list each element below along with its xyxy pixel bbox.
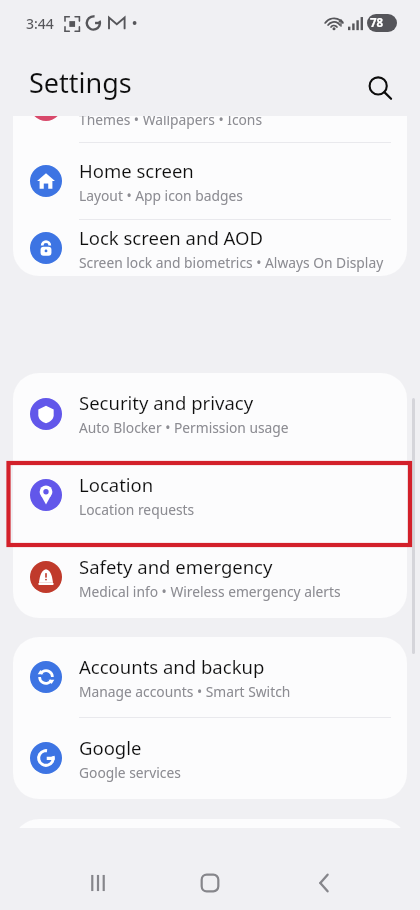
staticText: Medical info • Wireless emergency alerts bbox=[79, 582, 341, 601]
button[interactable]: Lock screen and AOD bbox=[13, 220, 407, 276]
staticText: Home screen bbox=[79, 158, 194, 183]
staticText: Lock screen and AOD bbox=[79, 225, 263, 250]
staticText: Manage accounts • Smart Switch bbox=[79, 682, 291, 701]
button[interactable]: Search bbox=[356, 64, 404, 112]
button[interactable]: Recent apps bbox=[62, 856, 134, 910]
button[interactable]: Security and privacy bbox=[13, 373, 407, 454]
staticText: Google services bbox=[79, 763, 181, 782]
staticText: Accounts and backup bbox=[79, 654, 265, 679]
button[interactable]: Location bbox=[13, 454, 407, 536]
button[interactable]: Safety and emergency bbox=[13, 536, 407, 618]
staticText: Settings bbox=[29, 64, 132, 101]
staticText: Google bbox=[79, 735, 142, 760]
staticText: Screen lock and biometrics • Always On D… bbox=[79, 253, 384, 272]
staticText: Layout • App icon badges bbox=[79, 186, 243, 205]
staticText: Location bbox=[79, 472, 154, 497]
staticText: Themes • Wallpapers • Icons bbox=[79, 116, 262, 129]
button[interactable]: Google bbox=[13, 718, 407, 798]
staticText: Security and privacy bbox=[79, 390, 254, 415]
button[interactable]: Back bbox=[289, 856, 361, 910]
button[interactable]: Accounts and backup bbox=[13, 637, 407, 717]
button[interactable]: Home screen bbox=[13, 143, 407, 219]
staticText: Location requests bbox=[79, 500, 195, 519]
button[interactable]: Home bbox=[174, 856, 246, 910]
staticText: Safety and emergency bbox=[79, 554, 273, 579]
staticText: Auto Blocker • Permission usage bbox=[79, 418, 289, 437]
button[interactable]: Themes bbox=[13, 116, 407, 142]
staticText: 78 bbox=[370, 15, 384, 31]
staticText: 3:44 bbox=[26, 14, 54, 33]
